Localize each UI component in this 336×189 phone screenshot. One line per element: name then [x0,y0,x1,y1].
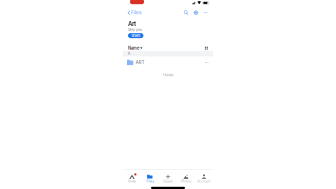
button[interactable]: Search [184,10,188,15]
button[interactable]: More options [203,10,208,15]
staticText: Share [131,33,140,38]
staticText: Art [128,20,136,27]
staticText: Files [146,180,153,183]
button[interactable]: Files [141,170,159,183]
staticText: ART [136,60,145,65]
staticText: Photos [181,180,191,183]
staticText: Files [131,10,141,15]
staticText: A [128,52,130,56]
button[interactable]: Home [123,170,141,183]
staticText: 1 folder [162,73,173,77]
button[interactable]: Account [195,170,213,183]
button[interactable]: Name [128,44,142,52]
staticText: Create [163,180,173,183]
button[interactable]: Files [128,8,144,17]
staticText: Home [128,180,136,183]
button[interactable]: Share [128,33,143,38]
button[interactable]: ART [123,56,213,68]
button[interactable]: Display settings [194,10,198,15]
staticText: Name [128,46,139,51]
staticText: Only you [128,28,142,31]
staticText: Account [197,180,210,183]
button[interactable]: Switch to grid view [205,46,208,50]
button[interactable]: Photos [177,170,195,183]
button[interactable]: Create [159,170,177,183]
